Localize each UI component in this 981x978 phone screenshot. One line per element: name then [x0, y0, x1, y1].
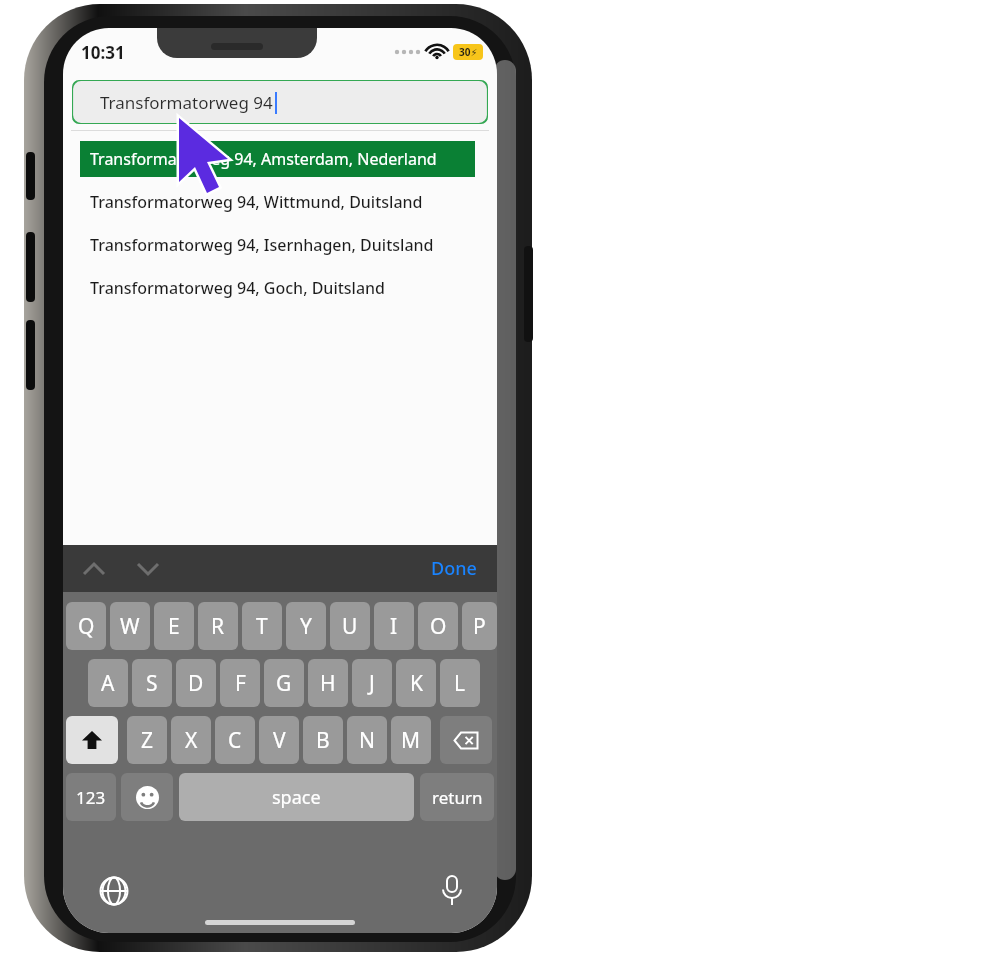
button[interactable]: space: [179, 773, 414, 821]
button[interactable]: B: [303, 716, 343, 764]
button[interactable]: K: [396, 659, 436, 707]
staticText: Q: [78, 612, 95, 641]
button[interactable]: R: [198, 602, 238, 650]
staticText: P: [473, 612, 486, 641]
staticText: M: [401, 726, 421, 755]
button[interactable]: J: [352, 659, 392, 707]
button[interactable]: Shift: [66, 716, 118, 764]
button[interactable]: S: [132, 659, 172, 707]
staticText: G: [276, 669, 292, 698]
button[interactable]: return: [420, 773, 494, 821]
button[interactable]: F: [220, 659, 260, 707]
staticText: 10:31: [81, 41, 125, 64]
button[interactable]: Emoji: [121, 773, 173, 821]
button[interactable]: I: [374, 602, 414, 650]
button[interactable]: L: [440, 659, 480, 707]
button[interactable]: Previous field: [81, 561, 107, 577]
staticText: 30⚡: [459, 45, 478, 59]
staticText: N: [359, 726, 375, 755]
staticText: Y: [300, 612, 312, 641]
staticText: 123: [76, 786, 106, 809]
staticText: J: [369, 669, 375, 698]
staticText: C: [228, 726, 242, 755]
staticText: I: [390, 612, 398, 641]
staticText: return: [432, 786, 483, 809]
button[interactable]: Y: [286, 602, 326, 650]
staticText: Transformatorweg 94, Isernhagen, Duitsla…: [90, 234, 434, 256]
staticText: Done: [431, 556, 477, 581]
staticText: W: [120, 612, 140, 641]
staticText: Transformatorweg 94, Goch, Duitsland: [90, 277, 386, 299]
staticText: F: [235, 669, 246, 698]
button[interactable]: Done: [425, 550, 483, 587]
staticText: space: [272, 785, 321, 810]
button[interactable]: W: [110, 602, 150, 650]
staticText: Z: [141, 726, 154, 755]
button[interactable]: X: [171, 716, 211, 764]
button[interactable]: P: [462, 602, 497, 650]
staticText: E: [168, 612, 180, 641]
staticText: Transformatorweg 94, Wittmund, Duitsland: [90, 191, 423, 213]
button[interactable]: Transformatorweg 94, Goch, Duitsland: [80, 270, 475, 306]
button[interactable]: N: [347, 716, 387, 764]
staticText: Transformatorweg 94, Amsterdam, Nederlan…: [90, 148, 437, 170]
button[interactable]: G: [264, 659, 304, 707]
button[interactable]: C: [215, 716, 255, 764]
button[interactable]: M: [391, 716, 431, 764]
button[interactable]: U: [330, 602, 370, 650]
staticText: B: [316, 726, 330, 755]
button[interactable]: Transformatorweg 94, Amsterdam, Nederlan…: [80, 141, 475, 177]
button[interactable]: Dictation: [441, 875, 463, 907]
button[interactable]: 123: [66, 773, 116, 821]
button[interactable]: Transformatorweg 94, Isernhagen, Duitsla…: [80, 227, 475, 263]
staticText: H: [320, 669, 336, 698]
staticText: S: [146, 669, 158, 698]
button[interactable]: H: [308, 659, 348, 707]
button[interactable]: T: [242, 602, 282, 650]
button[interactable]: Next field: [135, 561, 161, 577]
staticText: O: [430, 612, 447, 641]
button[interactable]: O: [418, 602, 458, 650]
button[interactable]: A: [88, 659, 128, 707]
staticText: A: [101, 669, 115, 698]
staticText: L: [454, 669, 466, 698]
button[interactable]: Backspace: [440, 716, 492, 764]
button[interactable]: Z: [127, 716, 167, 764]
staticText: Transformatorweg 94: [100, 91, 273, 114]
staticText: U: [342, 612, 358, 641]
button[interactable]: Transformatorweg 94, Wittmund, Duitsland: [80, 184, 475, 220]
button[interactable]: V: [259, 716, 299, 764]
button[interactable]: Switch keyboard: [99, 876, 129, 906]
staticText: V: [273, 726, 286, 755]
button[interactable]: D: [176, 659, 216, 707]
staticText: R: [211, 612, 225, 641]
button[interactable]: Transformatorweg 94: [72, 80, 488, 124]
staticText: K: [410, 669, 423, 698]
staticText: D: [188, 669, 204, 698]
staticText: T: [256, 612, 268, 641]
staticText: X: [185, 726, 198, 755]
button[interactable]: E: [154, 602, 194, 650]
button[interactable]: Q: [66, 602, 106, 650]
